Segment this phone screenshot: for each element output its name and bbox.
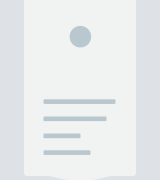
button[interactable]: Loading content [24,0,136,180]
